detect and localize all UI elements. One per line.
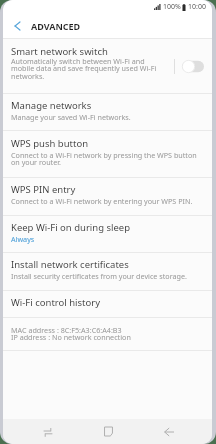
staticText: Connect to a Wi-Fi network by entering y… — [11, 196, 193, 206]
button[interactable]: Back — [139, 419, 212, 444]
button[interactable]: Install network certificates — [3, 253, 212, 290]
button[interactable]: Navigate up — [3, 14, 31, 38]
staticText: Keep Wi-Fi on during sleep — [11, 221, 131, 234]
staticText: Manage networks — [11, 99, 92, 112]
button[interactable]: Recent apps — [3, 419, 74, 444]
staticText: Always — [11, 234, 35, 244]
staticText: 10:00 — [188, 2, 206, 12]
staticText: WPS PIN entry — [11, 183, 76, 196]
button[interactable]: Manage networks — [3, 94, 212, 130]
staticText: Manage your saved Wi-Fi networks. — [11, 112, 131, 122]
staticText: Install network certificates — [11, 258, 129, 271]
staticText: ADVANCED — [31, 20, 81, 32]
button[interactable]: Wi-Fi control history — [3, 291, 212, 317]
button[interactable]: WPS PIN entry — [3, 178, 212, 215]
staticText: WPS push button — [11, 137, 89, 150]
staticText: Smart network switch — [11, 45, 108, 58]
staticText: MAC address : 8C:F5:A3:C6:A4:B3 IP addre… — [11, 325, 131, 342]
button[interactable]: Keep Wi-Fi on during sleep — [3, 216, 212, 252]
button[interactable]: Smart network switch toggle — [175, 39, 212, 93]
staticText: Wi-Fi control history — [11, 296, 101, 309]
staticText: Install security certificates from your … — [11, 271, 187, 281]
staticText: 100% — [163, 2, 181, 12]
staticText: Automatically switch between Wi-Fi and m… — [11, 56, 165, 81]
staticText: Connect to a Wi-Fi network by pressing t… — [11, 150, 204, 167]
button[interactable]: WPS push button — [3, 131, 212, 177]
button[interactable]: Home — [74, 419, 139, 444]
button[interactable]: Smart network switch — [3, 39, 174, 93]
